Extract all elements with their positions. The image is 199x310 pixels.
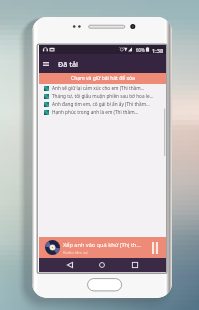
button[interactable]: Open navigation menu bbox=[39, 54, 52, 73]
button[interactable]: Pause bbox=[147, 237, 163, 258]
staticText: Chạm và giữ bài hát để xóa bbox=[71, 75, 135, 82]
staticText: Anh sẽ giữ lại cảm xúc cho em (Thì thầm… bbox=[52, 85, 145, 91]
staticText: Hạnh phúc trong anh là em (Thì thầm… bbox=[52, 109, 139, 115]
button[interactable]: Home bbox=[91, 258, 113, 272]
staticText: Radio tâm sự bbox=[63, 250, 88, 255]
button[interactable]: Tháng tư, tôi giấu muộn phiền sau bờ hoa… bbox=[39, 92, 166, 100]
button[interactable]: Hạnh phúc trong anh là em (Thì thầm… bbox=[39, 108, 166, 116]
button[interactable]: Xếp anh vào quá khứ (Thị th… bbox=[39, 237, 166, 258]
staticText: Đã tải bbox=[58, 59, 79, 69]
button[interactable]: Anh sẽ giữ lại cảm xúc cho em (Thì thầm… bbox=[39, 84, 166, 92]
button[interactable]: Anh đang tìm em, cô gái bí ẩn ấy (Thì th… bbox=[39, 100, 166, 108]
staticText: Xếp anh vào quá khứ (Thị th… bbox=[63, 241, 141, 249]
staticText: 1:38 bbox=[152, 47, 164, 55]
button[interactable]: Recent apps bbox=[124, 258, 146, 272]
staticText: 60% bbox=[136, 47, 145, 53]
button[interactable]: Chạm và giữ bài hát để xóa bbox=[39, 73, 166, 84]
staticText: Tháng tư, tôi giấu muộn phiền sau bờ hoa… bbox=[52, 93, 154, 99]
button[interactable]: Back bbox=[59, 258, 81, 272]
staticText: Anh đang tìm em, cô gái bí ẩn ấy (Thì th… bbox=[52, 101, 150, 107]
